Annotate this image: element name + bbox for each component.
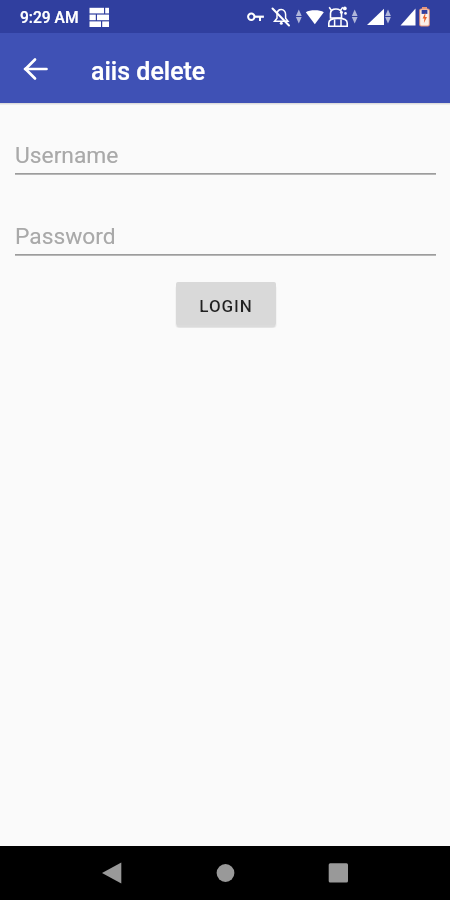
button[interactable]: Back: [87, 855, 135, 900]
staticText: LOGIN: [199, 296, 253, 316]
staticText: aiis delete: [91, 58, 206, 86]
staticText: 9:29 AM: [20, 10, 79, 26]
button[interactable]: Recent apps: [314, 855, 362, 900]
button[interactable]: Navigate up: [14, 47, 58, 91]
staticText: Username: [15, 142, 119, 168]
button[interactable]: LOGIN: [176, 282, 276, 325]
button[interactable]: Home: [201, 855, 249, 900]
staticText: Password: [15, 223, 116, 249]
